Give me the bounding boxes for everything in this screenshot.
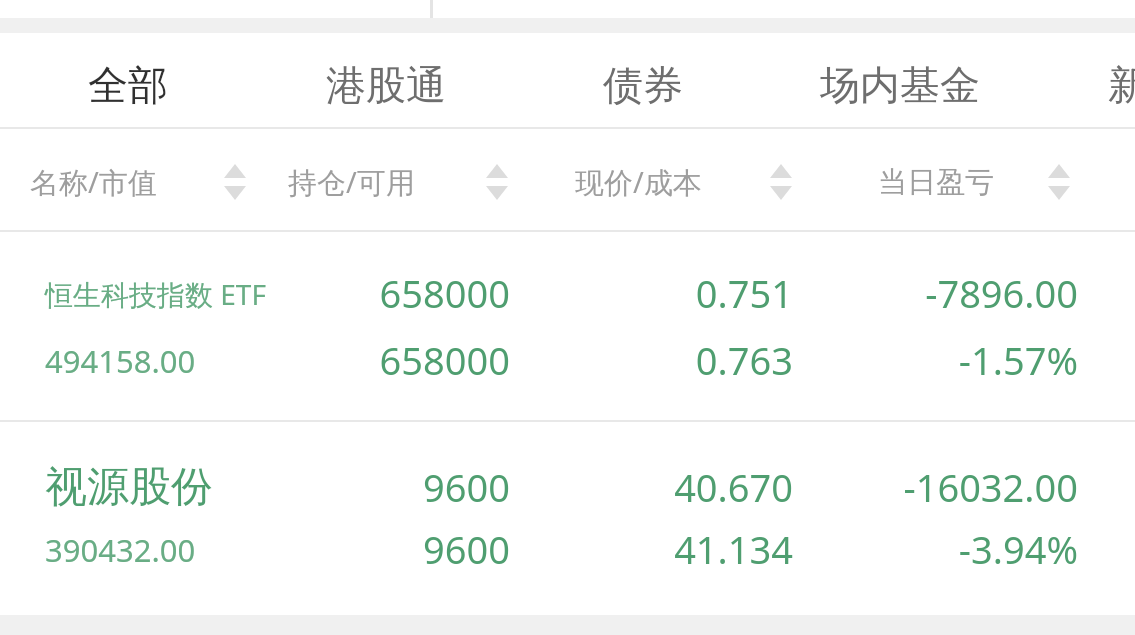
staticText: 658000 — [180, 334, 510, 386]
button[interactable] — [0, 422, 1135, 615]
button[interactable]: 港股通 — [271, 38, 501, 132]
staticText: -3.94% — [738, 523, 1078, 575]
staticText: 新 — [1108, 60, 1135, 110]
staticText: 41.134 — [493, 523, 793, 575]
staticText: 40.670 — [493, 461, 793, 513]
staticText: 658000 — [180, 267, 510, 319]
staticText: 当日盈亏 — [878, 164, 1108, 201]
staticText: -1.57% — [748, 334, 1078, 386]
staticText: 9600 — [180, 523, 510, 575]
button[interactable]: Sort by 名称/市值 — [24, 148, 257, 216]
staticText: 现价/成本 — [575, 162, 805, 202]
button[interactable]: Sort by 持仓/可用 — [282, 148, 519, 216]
button[interactable]: 债券 — [528, 38, 758, 132]
staticText: 债券 — [603, 60, 683, 110]
staticText: 0.751 — [493, 267, 793, 319]
staticText: 名称/市值 — [30, 162, 260, 202]
button[interactable] — [0, 232, 1135, 420]
staticText: 视源股份 — [45, 461, 365, 514]
staticText: -7896.00 — [748, 267, 1078, 319]
staticText: 494158.00 — [45, 340, 345, 382]
staticText: 场内基金 — [820, 60, 980, 110]
staticText: 9600 — [180, 461, 510, 513]
button[interactable]: Sort by 当日盈亏 — [872, 148, 1081, 216]
staticText: -16032.00 — [738, 461, 1078, 513]
staticText: 港股通 — [326, 60, 446, 110]
staticText: 持仓/可用 — [288, 162, 518, 202]
staticText: 390432.00 — [45, 529, 365, 571]
staticText: 恒生科技指数 ETF — [45, 275, 345, 313]
button[interactable]: 全部 — [13, 38, 243, 132]
button[interactable]: Sort by 现价/成本 — [569, 148, 803, 216]
staticText: 全部 — [88, 60, 168, 110]
button[interactable]: 新 — [1013, 38, 1135, 132]
staticText: 0.763 — [493, 334, 793, 386]
button[interactable]: 场内基金 — [785, 38, 1015, 132]
